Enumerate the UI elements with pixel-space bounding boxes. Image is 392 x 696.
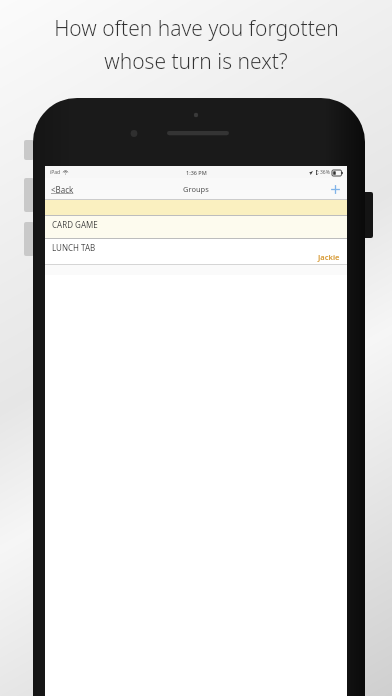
staticText: 36% xyxy=(320,169,330,176)
staticText: CARD GAME xyxy=(52,219,98,230)
staticText: 1:36 PM xyxy=(186,169,207,176)
staticText: Jackie xyxy=(318,252,340,262)
staticText: Groups xyxy=(183,184,209,194)
staticText: How often have you forgotten xyxy=(54,14,339,43)
staticText: whose turn is next? xyxy=(104,47,288,76)
staticText: iPad xyxy=(50,169,61,176)
button[interactable]: LUNCH TAB xyxy=(45,239,347,264)
staticText: LUNCH TAB xyxy=(52,242,96,253)
button[interactable]: CARD GAME xyxy=(45,216,347,238)
staticText: <Back xyxy=(51,184,74,195)
button[interactable]: Add group xyxy=(324,182,347,197)
button[interactable]: <Back xyxy=(45,181,80,198)
